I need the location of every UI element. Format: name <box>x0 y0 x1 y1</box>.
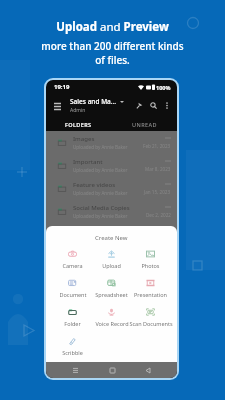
staticText: FOLDERS <box>65 121 92 128</box>
staticText: Sales and Ma... <box>70 97 117 106</box>
button[interactable]: Social Media Copies <box>46 200 177 223</box>
button[interactable]: Voice Record <box>92 306 131 335</box>
button[interactable]: Spreadsheet <box>92 277 131 306</box>
button[interactable]: FOLDERS <box>46 117 111 131</box>
button[interactable]: More options <box>161 100 172 111</box>
staticText: 100% <box>156 84 171 91</box>
button[interactable]: Search <box>148 100 159 111</box>
staticText: Upload and Preview <box>56 19 169 35</box>
staticText: Folder <box>64 320 81 327</box>
staticText: Uploaded by Annie Baker <box>73 213 128 219</box>
staticText: Social Media Copies <box>73 204 130 212</box>
staticText: Feb 21, 2023 <box>143 143 171 149</box>
staticText: Uploaded by Annie Baker <box>73 167 128 173</box>
staticText: Dec 2, 2022 <box>146 212 171 218</box>
button[interactable]: Home <box>105 363 119 377</box>
button[interactable]: Scan Documents <box>131 306 170 335</box>
staticText: Upload <box>102 262 121 269</box>
staticText: Important <box>73 158 103 166</box>
button[interactable]: UNREAD <box>111 117 177 131</box>
button[interactable]: Images <box>46 131 177 154</box>
staticText: Admin <box>70 107 86 114</box>
staticText: Uploaded by Annie Baker <box>73 190 128 196</box>
staticText: Spreadsheet <box>95 291 128 298</box>
button[interactable]: Presentation <box>131 277 170 306</box>
staticText: Scribble <box>62 349 83 356</box>
staticText: Feature videos <box>73 181 116 189</box>
staticText: 19:19 <box>54 83 70 91</box>
button[interactable]: Camera <box>53 248 92 277</box>
button[interactable]: Recent apps <box>68 363 82 377</box>
button[interactable]: Pin <box>134 100 145 111</box>
staticText: Scan Documents <box>129 320 173 327</box>
staticText: Mar 8, 2023 <box>145 166 171 172</box>
staticText: Uploaded by Annie Baker <box>73 144 128 150</box>
staticText: Create New <box>95 234 128 242</box>
button[interactable]: Photos <box>131 248 170 277</box>
staticText: UNREAD <box>132 121 157 128</box>
button[interactable]: Folder <box>53 306 92 335</box>
staticText: Voice Record <box>95 320 129 327</box>
staticText: Document <box>59 291 87 298</box>
staticText: more than 200 different kinds of files. <box>0 39 225 67</box>
button[interactable]: Scribble <box>53 335 92 362</box>
button[interactable]: Upload <box>92 248 131 277</box>
staticText: Photos <box>141 262 160 269</box>
button[interactable]: Back <box>141 363 155 377</box>
staticText: Presentation <box>134 291 167 298</box>
staticText: Images <box>73 135 95 143</box>
staticText: Camera <box>62 262 83 269</box>
button[interactable]: Important <box>46 154 177 177</box>
button[interactable]: Feature videos <box>46 177 177 200</box>
button[interactable]: Document <box>53 277 92 306</box>
staticText: Jan 15, 2023 <box>144 189 171 195</box>
button[interactable]: Navigation menu <box>52 100 63 111</box>
